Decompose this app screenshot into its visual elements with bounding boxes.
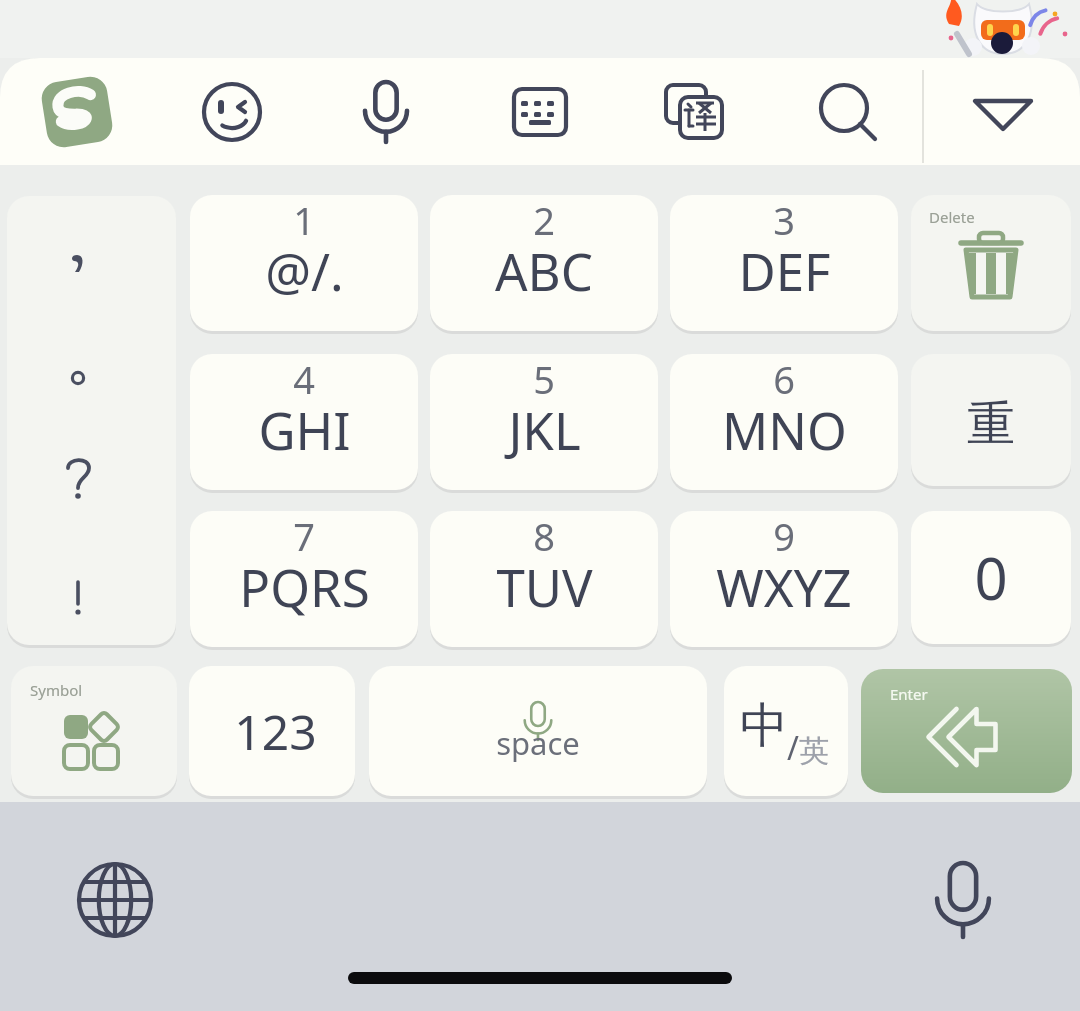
button[interactable]: Switch language [60,845,170,955]
button[interactable]: 8 TUV [430,511,658,647]
staticText: space [496,722,580,762]
staticText: TUV [496,552,593,621]
button[interactable]: Symbols [11,666,177,796]
button[interactable]: Punctuation [7,196,176,645]
staticText: 3 [773,194,795,240]
button[interactable]: Sogou keyboard menu [12,62,142,162]
button[interactable]: 5 JKL [430,354,658,490]
staticText: JKL [508,395,581,464]
button[interactable]: Search [785,62,909,162]
button[interactable]: Delete [911,195,1071,331]
button[interactable]: Emoji [170,62,294,162]
staticText: 0 [974,538,1008,617]
staticText: 1 [293,194,315,240]
staticText: WXYZ [716,552,852,621]
button[interactable]: 123 [189,666,355,796]
staticText: 9 [773,510,795,556]
button[interactable]: Enter [861,669,1072,793]
staticText: DEF [738,236,831,305]
staticText: GHI [258,395,351,464]
button[interactable]: Repeat [911,354,1071,486]
staticText: 4 [293,353,315,399]
staticText: 6 [773,353,795,399]
staticText: 英 [799,732,829,770]
staticText: 重 [967,394,1015,454]
staticText: @/. [265,236,344,305]
button[interactable]: Chinese English toggle [724,666,848,796]
button[interactable]: Translate [632,62,756,162]
button[interactable]: space [369,666,707,796]
staticText: PQRS [239,552,370,621]
button[interactable]: 1 @/. [190,195,418,331]
staticText: 7 [293,510,315,556]
staticText: 5 [533,353,555,399]
staticText: ABC [495,236,593,305]
button[interactable]: 0 [911,511,1071,644]
button[interactable]: Keyboard layout [478,62,602,162]
staticText: 2 [533,194,555,240]
button[interactable]: 2 ABC [430,195,658,331]
button[interactable]: 9 WXYZ [670,511,898,647]
staticText: 8 [533,510,555,556]
button[interactable]: 7 PQRS [190,511,418,647]
button[interactable]: Voice input [324,62,448,162]
staticText: Symbol [30,680,83,700]
staticText: 中 [740,696,788,756]
button[interactable]: Voice [908,845,1018,955]
staticText: 123 [234,699,317,764]
button[interactable]: 3 DEF [670,195,898,331]
staticText: Delete [929,207,975,227]
staticText: MNO [722,395,847,464]
button[interactable]: 4 GHI [190,354,418,490]
staticText: Enter [890,684,928,704]
staticText: / [787,726,799,762]
button[interactable]: Collapse keyboard [941,62,1065,162]
button[interactable]: 6 MNO [670,354,898,490]
